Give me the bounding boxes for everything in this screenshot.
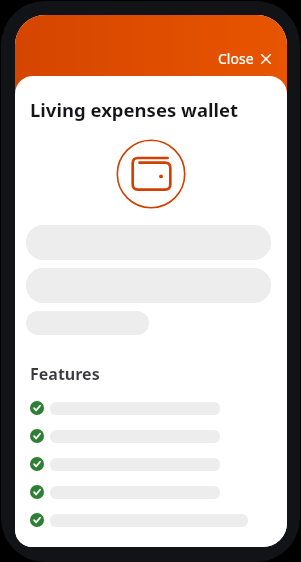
button[interactable]: Close	[214, 44, 275, 73]
staticText: Close	[218, 49, 254, 68]
staticText: Features	[30, 363, 100, 385]
staticText: Living expenses wallet	[30, 97, 239, 122]
